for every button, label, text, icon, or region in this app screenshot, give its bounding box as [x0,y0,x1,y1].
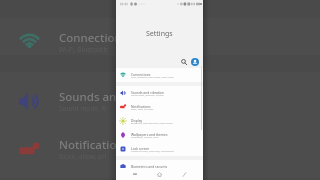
staticText: Block, allow, prioritize [131,108,154,111]
button[interactable]: Recent apps [128,168,141,180]
button[interactable]: Search [179,57,188,66]
button[interactable]: Connections [0,14,116,62]
staticText: Settings [146,29,173,39]
button[interactable]: Notifications [0,121,116,169]
staticText: Block, allow, pri [59,152,107,161]
button[interactable]: Lock screen [116,142,203,156]
button[interactable]: Sounds and vibration [116,86,203,100]
button[interactable]: Wallpapers and themes [116,128,203,142]
button[interactable]: Biometrics and security [116,160,203,174]
staticText: Notifications [59,137,130,153]
staticText: Sound mode, Ringtone, Volume [131,94,164,97]
button[interactable]: Home [153,168,166,180]
button[interactable]: Display [116,114,203,128]
staticText: Wallpapers, Themes, Icons [131,136,159,139]
button[interactable]: Notifications [116,100,203,114]
staticText: Wi-Fi, Bluetooth, Data usage, Flight mod… [131,76,174,79]
staticText: Lock screen [131,146,150,150]
staticText: Biometrics and security [131,164,168,168]
staticText: Sounds and vibration [131,90,164,94]
staticText: Wallpapers and themes [131,132,168,136]
staticText: Notifications [131,104,151,108]
button[interactable]: Sounds and [0,73,116,121]
staticText: Wi-Fi, Bluetooth [59,45,108,54]
staticText: Sound mode, Ri [59,104,108,113]
button[interactable]: Back [178,168,191,180]
staticText: Brightness, Blue light filter, Home scre… [131,122,173,125]
button[interactable]: Connections [116,68,203,82]
staticText: Display [131,118,143,122]
button[interactable]: Account [190,57,199,66]
staticText: Sounds and [59,89,124,105]
staticText: Connections [59,30,128,46]
staticText: Connections [131,72,151,76]
staticText: Screen lock type, Clock style, FaceWidge… [131,150,174,153]
